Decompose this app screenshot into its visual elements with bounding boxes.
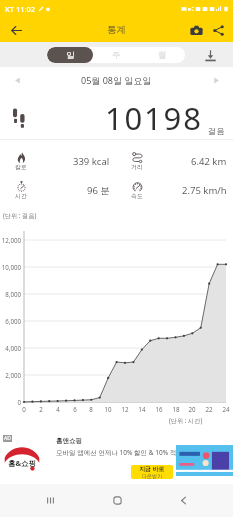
staticText: 12,000	[0, 236, 21, 244]
button[interactable]: 거리	[116, 146, 233, 176]
button[interactable]: Home	[100, 484, 134, 517]
button[interactable]: 속도	[116, 176, 233, 205]
staticText: AD	[4, 435, 11, 442]
staticText: 18	[168, 405, 184, 413]
staticText: 홈&쇼핑	[8, 458, 37, 468]
staticText: 14	[134, 405, 150, 413]
staticText: 속도	[131, 192, 143, 200]
staticText: 6	[67, 405, 83, 413]
staticText: 0	[0, 398, 21, 406]
button[interactable]: 지금 바로	[131, 465, 173, 479]
button[interactable]: Camera	[187, 21, 205, 39]
staticText: 10	[100, 405, 116, 413]
staticText: 주	[112, 50, 121, 61]
staticText: 22	[201, 405, 217, 413]
staticText: 05월 08일 일요일	[81, 74, 152, 86]
staticText: 걸음	[208, 126, 225, 136]
staticText: 시간	[15, 192, 27, 200]
staticText: 6,000	[0, 317, 21, 325]
staticText: 12	[117, 405, 133, 413]
staticText: 20	[184, 405, 200, 413]
staticText: 다운받기	[142, 473, 162, 479]
button[interactable]: Previous day	[9, 72, 25, 88]
button[interactable]: Back	[7, 21, 25, 39]
button[interactable]: 시간	[0, 176, 116, 205]
button[interactable]: 칼로	[0, 146, 116, 176]
staticText: 2,000	[0, 371, 21, 379]
staticText: 339 kcal	[73, 155, 110, 168]
staticText: 거리	[131, 163, 143, 171]
staticText: 10198	[105, 97, 203, 139]
staticText: 6.42 km	[191, 155, 227, 168]
button[interactable]: 주	[93, 47, 139, 63]
staticText: 24	[218, 405, 233, 413]
button[interactable]: 일	[47, 47, 93, 63]
staticText: 월	[158, 50, 167, 61]
staticText: 8,000	[0, 290, 21, 298]
button[interactable]: Back	[166, 484, 200, 517]
staticText: 칼로	[15, 163, 27, 171]
staticText: 지금 바로	[139, 465, 165, 473]
staticText: 2.75 km/h	[182, 184, 227, 197]
staticText: 16	[151, 405, 167, 413]
staticText: 통계	[107, 24, 126, 36]
staticText: 0	[16, 405, 32, 413]
button[interactable]: Share	[209, 21, 227, 39]
staticText: 4	[50, 405, 66, 413]
staticText: KT 11:02	[5, 4, 36, 14]
staticText: 일	[66, 50, 75, 61]
staticText: 4,000	[0, 344, 21, 352]
button[interactable]: AD	[0, 433, 233, 484]
button[interactable]: Next day	[208, 72, 224, 88]
staticText: (단위 : 시간)	[169, 416, 203, 424]
staticText: 2	[33, 405, 49, 413]
staticText: 96 분	[87, 184, 110, 197]
staticText: (단위 : 걸음)	[3, 211, 37, 219]
staticText: 8	[83, 405, 99, 413]
button[interactable]: 월	[139, 47, 185, 63]
staticText: 홈앤쇼핑	[56, 437, 82, 445]
button[interactable]: Recent apps	[33, 484, 67, 517]
staticText: 10,000	[0, 263, 21, 271]
button[interactable]: Download	[202, 47, 218, 63]
staticText: 모바일 앱에선 언제나 10% 할인 & 10% 적립!	[56, 448, 185, 457]
